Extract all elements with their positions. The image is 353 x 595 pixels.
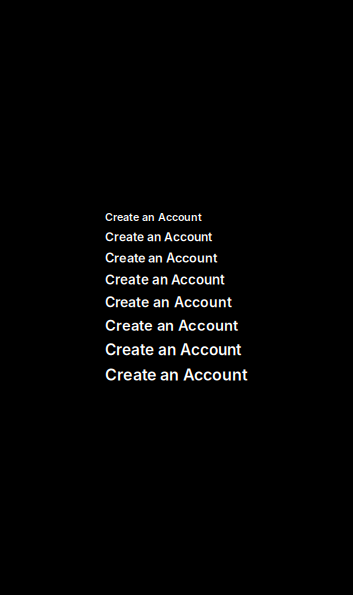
staticText: Create an Account [105, 340, 241, 359]
staticText: Create an Account [105, 230, 212, 244]
staticText: Create an Account [105, 317, 238, 334]
staticText: Create an Account [105, 365, 248, 384]
staticText: Create an Account [105, 250, 217, 265]
staticText: Create an Account [105, 211, 202, 224]
staticText: Create an Account [105, 271, 225, 288]
staticText: Create an Account [105, 294, 232, 310]
